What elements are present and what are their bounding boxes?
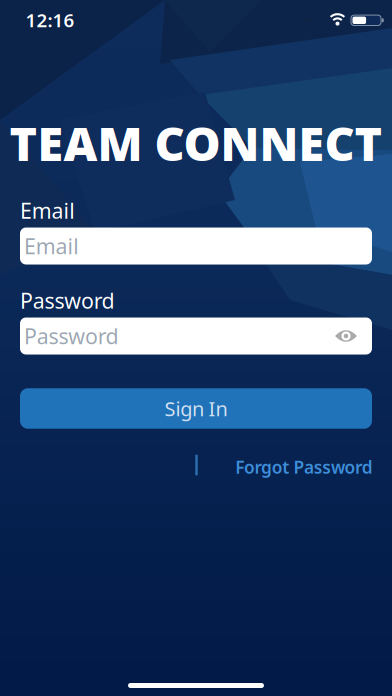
staticText: TEAM CONNECT bbox=[9, 112, 382, 174]
staticText: Email bbox=[20, 196, 75, 225]
staticText: 12:16 bbox=[25, 8, 74, 32]
staticText: Sign In bbox=[165, 395, 227, 422]
button[interactable]: Password bbox=[20, 317, 372, 354]
button[interactable]: Sign In bbox=[20, 388, 372, 429]
staticText: Password bbox=[20, 286, 115, 315]
button[interactable]: Forgot Password bbox=[235, 455, 373, 478]
staticText: Forgot Password bbox=[235, 455, 373, 478]
staticText: Password bbox=[24, 322, 119, 350]
button[interactable] bbox=[328, 321, 364, 351]
staticText: Email bbox=[24, 232, 79, 260]
button[interactable]: Email bbox=[20, 227, 372, 264]
